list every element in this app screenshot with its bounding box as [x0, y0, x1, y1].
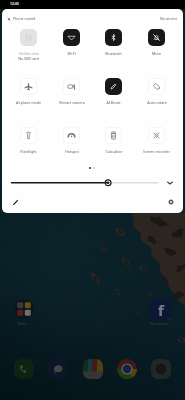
staticText: Calculator [105, 149, 123, 154]
button[interactable]: Expand [166, 179, 174, 187]
button[interactable]: Flashlight [7, 124, 50, 154]
staticText: Hotspot [65, 149, 79, 154]
button[interactable]: Calculator [92, 124, 135, 154]
staticText: Tools [17, 321, 28, 327]
staticText: Phone muted [13, 16, 36, 21]
staticText: 12:40 [10, 1, 19, 6]
button[interactable] [14, 299, 34, 319]
button[interactable]: Mobile data [7, 26, 50, 56]
button[interactable]: Settings [165, 196, 177, 208]
button[interactable]: Auto-rotate [135, 75, 178, 105]
staticText: Flashlight [20, 149, 37, 154]
staticText: f [158, 300, 164, 320]
button[interactable]: Brightness [2, 176, 183, 190]
staticText: Screen recorder [143, 149, 170, 154]
button[interactable]: Screen recorder [135, 124, 178, 154]
button[interactable]: Edit [9, 196, 21, 208]
staticText: Wi-Fi [67, 51, 76, 56]
button[interactable]: Camera [151, 359, 171, 379]
button[interactable]: AI Boost [92, 75, 135, 105]
button[interactable]: Play Store [83, 359, 103, 379]
button[interactable] [48, 359, 68, 379]
button[interactable]: f [150, 299, 171, 320]
staticText: Mute [152, 51, 161, 56]
button[interactable]: Chrome [117, 359, 137, 379]
staticText: Mobile data [19, 51, 39, 56]
staticText: Airplane mode [16, 100, 41, 105]
staticText: Retract camera [59, 100, 85, 105]
button[interactable]: Retract camera [50, 75, 93, 105]
staticText: Auto-rotate [147, 100, 167, 105]
staticText: No SIM card [18, 56, 39, 61]
button[interactable]: Airplane mode [7, 75, 50, 105]
button[interactable] [14, 359, 34, 379]
button[interactable]: Bluetooth [92, 26, 135, 56]
staticText: No service [160, 16, 178, 21]
staticText: Bluetooth [105, 51, 122, 56]
staticText: Facebook [150, 321, 169, 327]
button[interactable]: Mute [135, 26, 178, 56]
button[interactable]: Wi-Fi [50, 26, 93, 56]
button[interactable]: Hotspot [50, 124, 93, 154]
staticText: AI Boost [106, 100, 121, 105]
